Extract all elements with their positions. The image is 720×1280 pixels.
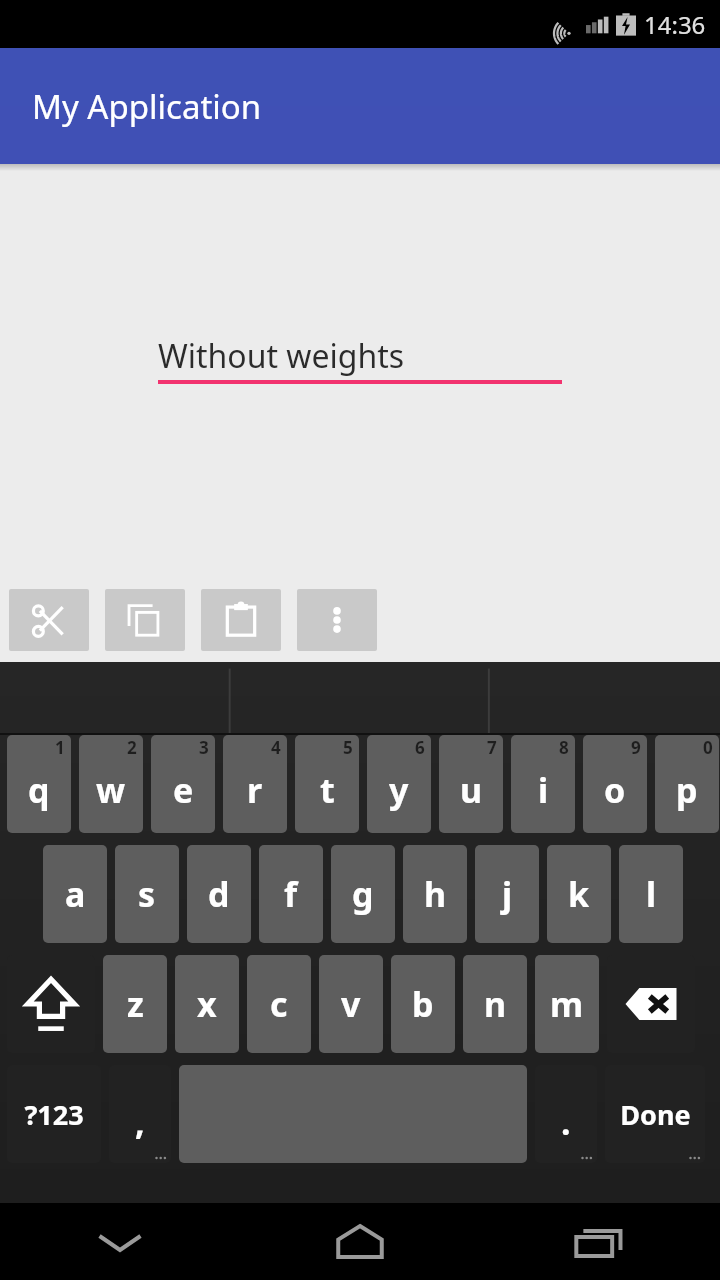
button[interactable]: m: [535, 955, 599, 1053]
staticText: 6: [415, 736, 425, 759]
button[interactable]: 8: [511, 735, 575, 833]
button[interactable]: h: [403, 845, 467, 943]
staticText: y: [389, 767, 409, 813]
staticText: r: [247, 767, 263, 813]
staticText: u: [460, 767, 483, 813]
staticText: p: [676, 767, 698, 813]
staticText: 7: [487, 736, 497, 759]
staticText: 5: [343, 736, 353, 759]
staticText: ,: [135, 1099, 145, 1145]
staticText: o: [604, 767, 626, 813]
staticText: 0: [703, 736, 713, 759]
staticText: 14:36: [644, 8, 706, 41]
staticText: t: [320, 767, 335, 813]
staticText: 1: [55, 736, 65, 759]
button[interactable]: Copy: [105, 589, 185, 651]
button[interactable]: 9: [583, 735, 647, 833]
staticText: e: [173, 767, 194, 813]
button[interactable]: 7: [439, 735, 503, 833]
staticText: h: [424, 871, 447, 917]
button[interactable]: Paste: [201, 589, 281, 651]
staticText: 3: [199, 736, 209, 759]
button[interactable]: 6: [367, 735, 431, 833]
staticText: m: [550, 981, 584, 1027]
staticText: 2: [127, 736, 137, 759]
staticText: Without weights: [158, 334, 405, 378]
button[interactable]: Shift: [7, 955, 95, 1053]
staticText: 4: [271, 736, 281, 759]
button[interactable]: 4: [223, 735, 287, 833]
button[interactable]: .: [535, 1065, 597, 1163]
button[interactable]: Recents: [480, 1203, 720, 1280]
button[interactable]: v: [319, 955, 383, 1053]
button[interactable]: b: [391, 955, 455, 1053]
staticText: f: [284, 871, 298, 917]
button[interactable]: Done: [605, 1065, 705, 1163]
button[interactable]: a: [43, 845, 107, 943]
staticText: l: [646, 871, 657, 917]
button[interactable]: 5: [295, 735, 359, 833]
staticText: 9: [631, 736, 641, 759]
staticText: a: [65, 871, 86, 917]
staticText: 8: [559, 736, 569, 759]
button[interactable]: k: [547, 845, 611, 943]
staticText: x: [197, 981, 217, 1027]
staticText: n: [484, 981, 507, 1027]
staticText: My Application: [32, 84, 262, 129]
staticText: g: [352, 871, 374, 917]
button[interactable]: Cut: [9, 589, 89, 651]
button[interactable]: n: [463, 955, 527, 1053]
button[interactable]: 2: [79, 735, 143, 833]
staticText: d: [208, 871, 230, 917]
staticText: q: [28, 767, 50, 813]
button[interactable]: Without weights: [158, 334, 562, 404]
staticText: z: [127, 981, 144, 1027]
button[interactable]: Backspace: [607, 955, 695, 1053]
staticText: w: [96, 767, 126, 813]
button[interactable]: More options: [297, 589, 377, 651]
button[interactable]: x: [175, 955, 239, 1053]
staticText: Done: [620, 1096, 691, 1133]
button[interactable]: c: [247, 955, 311, 1053]
button[interactable]: j: [475, 845, 539, 943]
staticText: v: [341, 981, 361, 1027]
button[interactable]: g: [331, 845, 395, 943]
button[interactable]: Home: [240, 1203, 480, 1280]
button[interactable]: l: [619, 845, 683, 943]
staticText: s: [138, 871, 156, 917]
staticText: k: [568, 871, 590, 917]
staticText: ?123: [24, 1096, 84, 1133]
staticText: j: [502, 871, 513, 917]
staticText: b: [412, 981, 434, 1027]
button[interactable]: Hide keyboard: [0, 1203, 240, 1280]
button[interactable]: ?123: [7, 1065, 101, 1163]
button[interactable]: z: [103, 955, 167, 1053]
staticText: .: [561, 1099, 571, 1145]
button[interactable]: s: [115, 845, 179, 943]
staticText: c: [270, 981, 288, 1027]
button[interactable]: 1: [7, 735, 71, 833]
staticText: i: [538, 767, 549, 813]
button[interactable]: 3: [151, 735, 215, 833]
button[interactable]: 0: [655, 735, 719, 833]
button[interactable]: f: [259, 845, 323, 943]
button[interactable]: d: [187, 845, 251, 943]
button[interactable]: ,: [109, 1065, 171, 1163]
